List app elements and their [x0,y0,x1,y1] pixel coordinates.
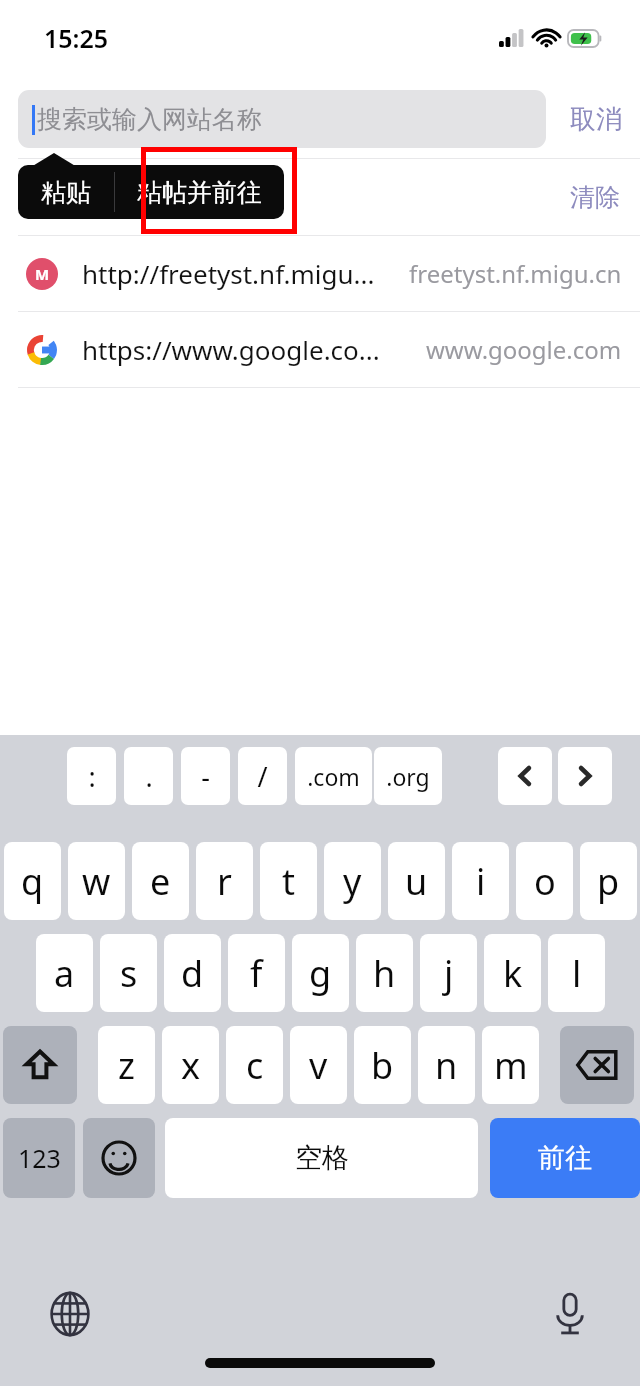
staticText: 15:25 [44,21,109,55]
staticText: freetyst.nf.migu.cn [409,257,622,290]
staticText: s [120,949,138,998]
button[interactable]: m [482,1026,539,1104]
button[interactable]: 123 [3,1118,75,1198]
staticText: 取消 [570,103,622,136]
button[interactable]: v [290,1026,347,1104]
staticText: u [405,857,428,906]
button[interactable]: - [181,747,230,805]
button[interactable]: : [67,747,116,805]
staticText: 空格 [295,1141,349,1175]
button[interactable]: t [260,842,317,920]
button[interactable]: Previous field [498,747,552,805]
staticText: 搜索或输入网站名称 [37,104,262,135]
button[interactable]: Emoji [83,1118,155,1198]
staticText: : [88,758,96,795]
button[interactable]: b [354,1026,411,1104]
button[interactable]: g [292,934,349,1012]
staticText: b [371,1041,394,1090]
button[interactable]: Shift [3,1026,77,1104]
staticText: j [444,949,454,998]
button[interactable]: 空格 [165,1118,478,1198]
staticText: 粘贴 [41,177,91,208]
button[interactable]: h [356,934,413,1012]
staticText: 123 [18,1141,61,1175]
button[interactable]: q [4,842,61,920]
staticText: r [217,857,232,906]
button[interactable]: .com [295,747,372,805]
staticText: - [201,758,210,795]
staticText: w [82,857,111,906]
button[interactable]: Dictation [542,1286,598,1342]
staticText: c [246,1041,264,1090]
staticText: o [534,857,556,906]
button[interactable]: f [228,934,285,1012]
staticText: k [503,949,523,998]
button[interactable]: r [196,842,253,920]
staticText: t [282,857,295,906]
staticText: q [21,857,44,906]
button[interactable]: y [324,842,381,920]
staticText: 前往 [538,1141,592,1175]
button[interactable]: .org [374,747,442,805]
button[interactable]: x [162,1026,219,1104]
button[interactable]: k [484,934,541,1012]
staticText: www.google.com [426,333,622,366]
button[interactable]: 粘贴 [18,165,114,219]
button[interactable]: e [132,842,189,920]
button[interactable]: https://www.google.co... [0,312,640,387]
staticText: 清除 [570,182,620,213]
button[interactable]: d [164,934,221,1012]
staticText: http://freetyst.nf.migu... [82,256,375,291]
button[interactable]: z [98,1026,155,1104]
staticText: n [435,1041,458,1090]
staticText: 粘帖并前往 [137,177,262,208]
button[interactable]: 取消 [566,95,626,144]
staticText: f [250,949,263,998]
staticText: a [54,949,75,998]
button[interactable]: M [0,236,640,311]
button[interactable]: 清除 [566,174,624,221]
button[interactable]: / [238,747,287,805]
staticText: https://www.google.co... [82,332,380,367]
staticText: . [145,758,153,795]
staticText: m [494,1041,528,1090]
staticText: / [257,758,268,795]
staticText: g [309,949,332,998]
button[interactable]: a [36,934,93,1012]
staticText: d [181,949,204,998]
button[interactable]: j [420,934,477,1012]
button[interactable]: . [124,747,173,805]
staticText: M [35,264,50,284]
button[interactable]: 前往 [490,1118,640,1198]
staticText: x [181,1041,201,1090]
button[interactable]: s [100,934,157,1012]
button[interactable]: 粘帖并前往 [115,165,284,219]
staticText: p [597,857,620,906]
button[interactable]: o [516,842,573,920]
button[interactable]: i [452,842,509,920]
button[interactable]: p [580,842,637,920]
staticText: .com [307,761,360,792]
button[interactable]: l [548,934,605,1012]
button[interactable]: u [388,842,445,920]
staticText: e [150,857,171,906]
button[interactable]: Next field [558,747,612,805]
staticText: l [572,949,582,998]
staticText: v [309,1041,328,1090]
button[interactable]: 搜索或输入网站名称 [18,90,546,148]
staticText: .org [386,761,430,792]
staticText: y [343,857,362,906]
button[interactable]: Change keyboard [42,1286,98,1342]
staticText: h [373,949,396,998]
button[interactable]: c [226,1026,283,1104]
button[interactable]: Backspace [560,1026,634,1104]
staticText: z [118,1041,135,1090]
button[interactable]: w [68,842,125,920]
button[interactable]: n [418,1026,475,1104]
staticText: i [476,857,486,906]
